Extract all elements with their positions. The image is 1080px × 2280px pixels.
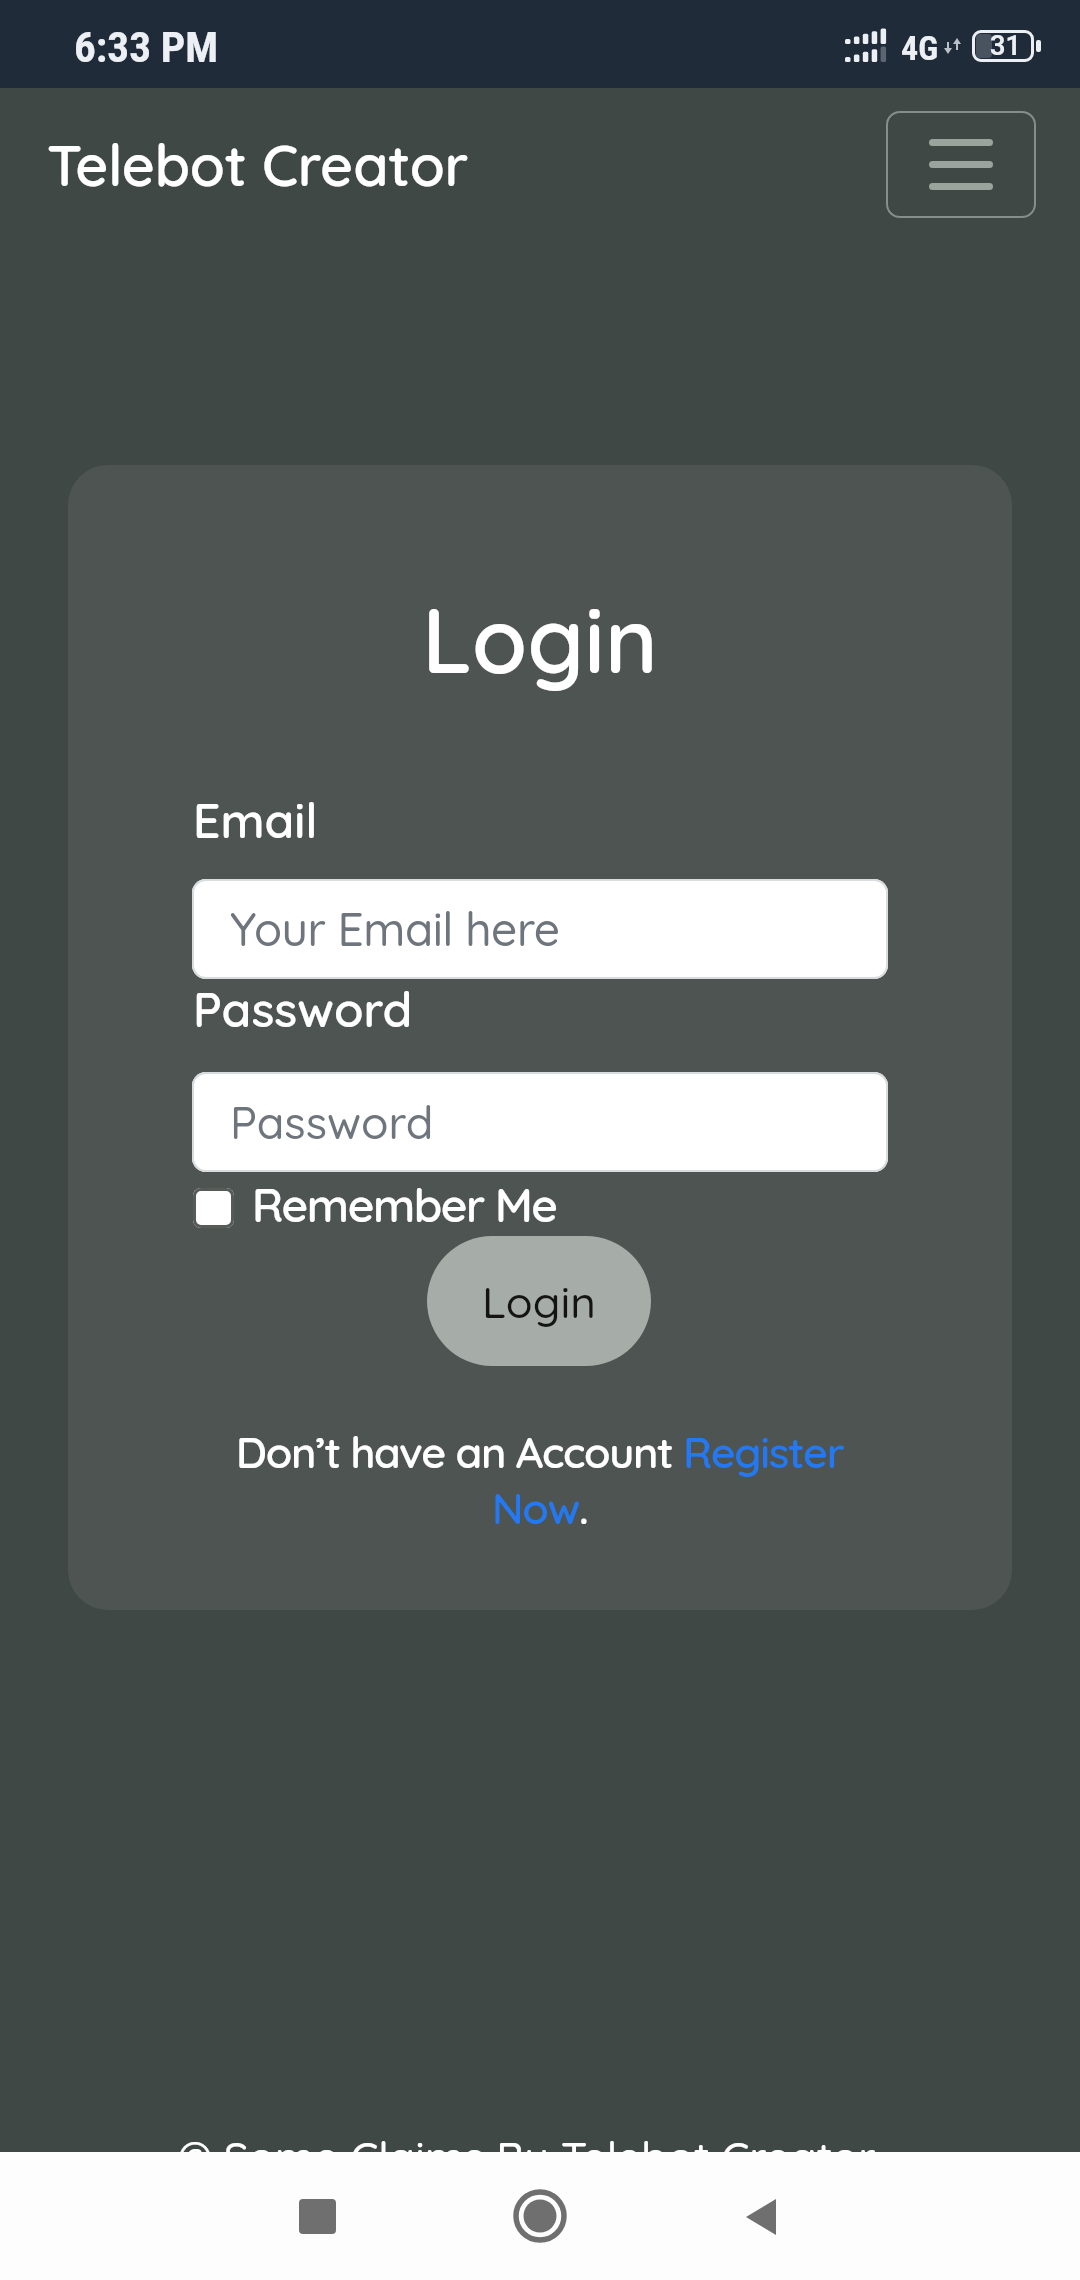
staticText: Don’t have an Account Register xyxy=(236,1425,844,1479)
button[interactable] xyxy=(886,111,1036,218)
staticText: Your Email here xyxy=(230,900,560,958)
button[interactable]: Password xyxy=(192,1072,888,1172)
staticText: Remember Me xyxy=(252,1176,557,1234)
staticText: 31 xyxy=(990,30,1021,62)
staticText: Telebot Creator xyxy=(47,129,469,200)
staticText: 4G xyxy=(901,29,939,68)
staticText: © Some Claims By Telebot Creator xyxy=(178,2130,876,2184)
button[interactable]: Login xyxy=(427,1236,651,1366)
staticText: Email xyxy=(193,790,318,850)
staticText: 6:33 PM xyxy=(74,23,219,72)
staticText: Password xyxy=(193,979,413,1039)
button[interactable]: Don’t have an Account Register xyxy=(0,1425,1080,1479)
button[interactable] xyxy=(299,2199,336,2234)
button[interactable]: Your Email here xyxy=(192,879,888,979)
staticText: Password xyxy=(230,1094,434,1150)
staticText: Now. xyxy=(492,1481,588,1535)
staticText: Login xyxy=(422,583,658,696)
button[interactable] xyxy=(744,2197,776,2237)
button[interactable] xyxy=(193,1188,234,1228)
staticText: Login xyxy=(482,1274,596,1329)
button[interactable] xyxy=(512,2188,568,2244)
